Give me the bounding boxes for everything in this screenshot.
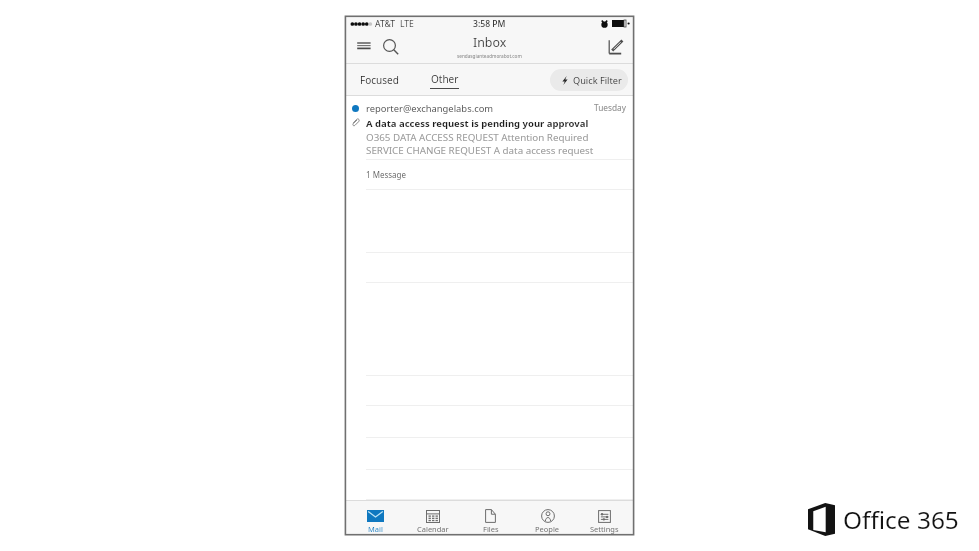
button[interactable]: People <box>519 501 576 534</box>
staticText: People <box>535 524 560 534</box>
button[interactable]: Quick Filter <box>550 69 628 91</box>
staticText: Other <box>431 72 459 86</box>
button[interactable]: Calendar <box>404 501 462 534</box>
staticText: AT&T <box>375 18 396 30</box>
staticText: 3:58 PM <box>473 18 506 30</box>
staticText: Mail <box>368 524 383 534</box>
staticText: 1 Message <box>366 169 407 180</box>
staticText: LTE <box>400 18 414 30</box>
staticText: Tuesday <box>594 102 626 113</box>
staticText: Settings <box>590 524 619 534</box>
button[interactable]: Search <box>382 36 400 58</box>
staticText: Files <box>483 524 499 534</box>
button[interactable]: Settings <box>576 501 633 534</box>
button[interactable]: Focused <box>354 68 405 92</box>
button[interactable]: Files <box>462 501 519 534</box>
button[interactable]: Menu <box>355 36 373 58</box>
button[interactable]: Other <box>426 72 463 89</box>
button[interactable]: Mail <box>346 501 404 534</box>
staticText: Quick Filter <box>573 74 622 87</box>
button[interactable]: New message <box>606 36 626 58</box>
button[interactable]: reporter@exchangelabs.com <box>346 96 633 159</box>
staticText: reporter@exchangelabs.com <box>366 102 494 115</box>
staticText: O365 DATA ACCESS REQUEST Attention Requi… <box>366 131 589 144</box>
staticText: Calendar <box>417 524 449 534</box>
staticText: Office 365 <box>843 503 959 536</box>
staticText: SERVICE CHANGE REQUEST A data access req… <box>366 144 594 157</box>
staticText: A data access request is pending your ap… <box>366 117 589 130</box>
staticText: Inbox <box>473 34 507 51</box>
staticText: sendasgianteadmorabot.com <box>457 53 522 59</box>
staticText: Focused <box>360 73 399 87</box>
button[interactable]: 1 Message <box>346 160 633 189</box>
